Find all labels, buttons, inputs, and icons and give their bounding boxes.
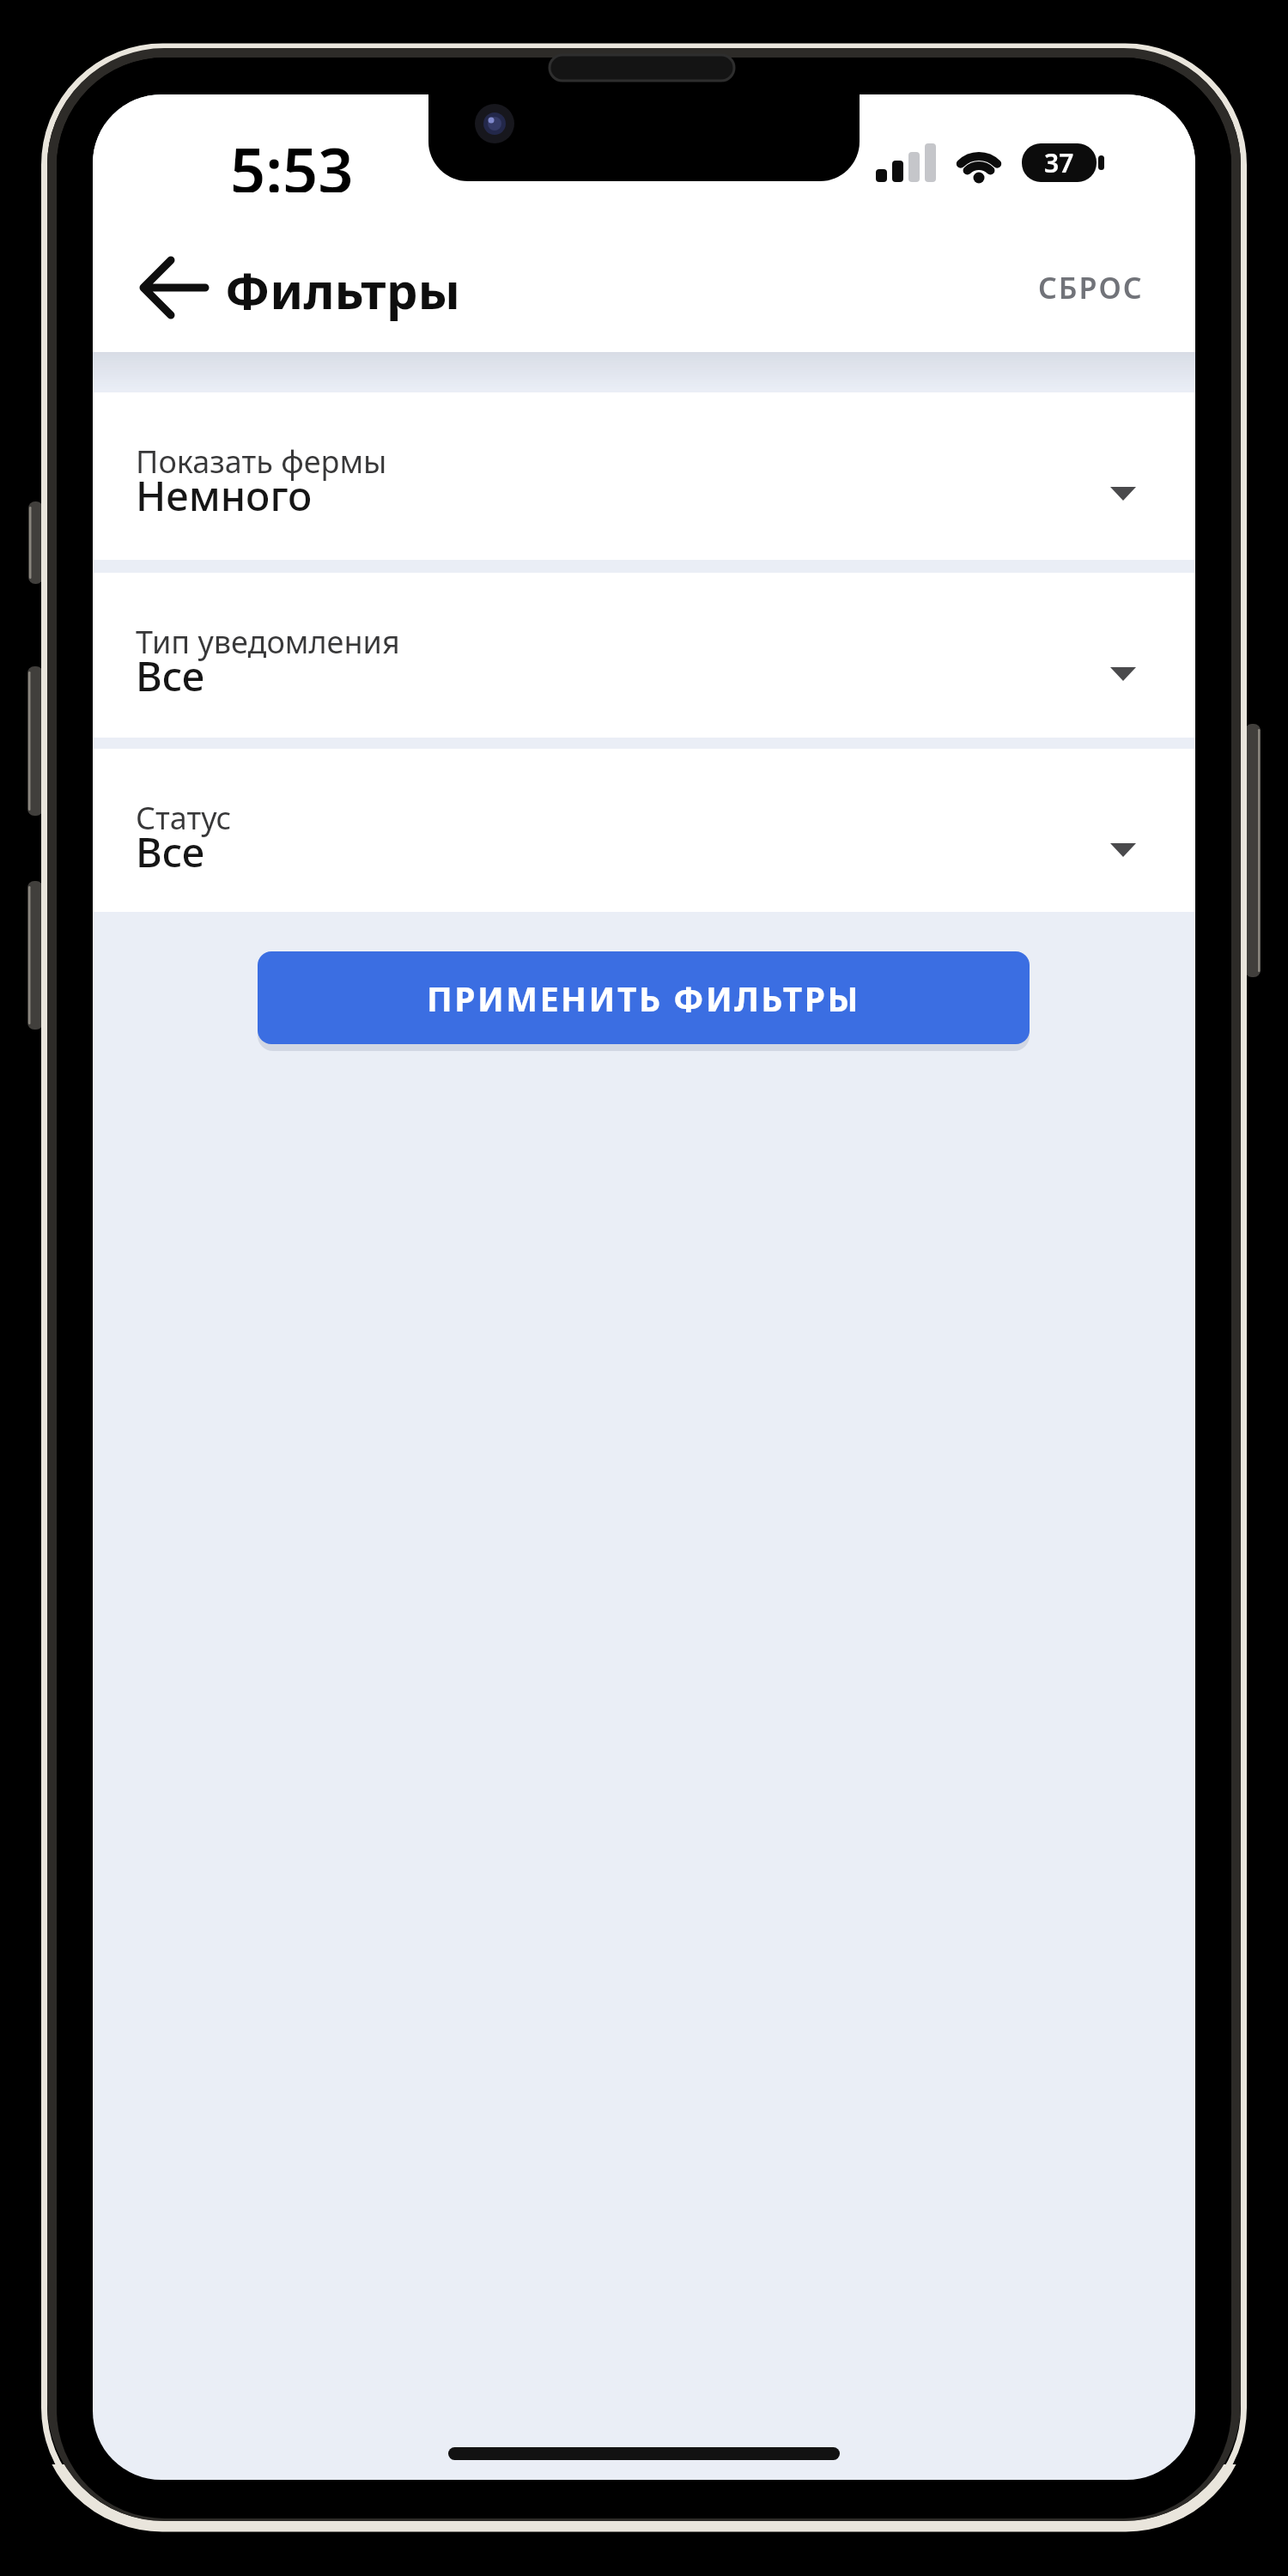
staticText: 37: [1044, 145, 1074, 180]
staticText: СБРОС: [1038, 268, 1144, 307]
button[interactable]: Тип уведомления: [93, 573, 1195, 738]
staticText: 5:53: [230, 127, 354, 192]
staticText: Все: [136, 648, 205, 703]
staticText: Все: [136, 824, 205, 879]
button[interactable]: [118, 249, 230, 326]
button[interactable]: СБРОС: [1018, 258, 1163, 318]
staticText: Тип уведомления: [136, 621, 400, 663]
staticText: Статус: [136, 797, 232, 839]
button[interactable]: ПРИМЕНИТЬ ФИЛЬТРЫ: [258, 951, 1030, 1044]
staticText: Фильтры: [225, 256, 460, 324]
staticText: Показать фермы: [136, 440, 387, 483]
button[interactable]: Статус: [93, 749, 1195, 912]
staticText: ПРИМЕНИТЬ ФИЛЬТРЫ: [427, 975, 860, 1021]
staticText: Немного: [136, 468, 313, 523]
button[interactable]: Показать фермы: [93, 392, 1195, 560]
